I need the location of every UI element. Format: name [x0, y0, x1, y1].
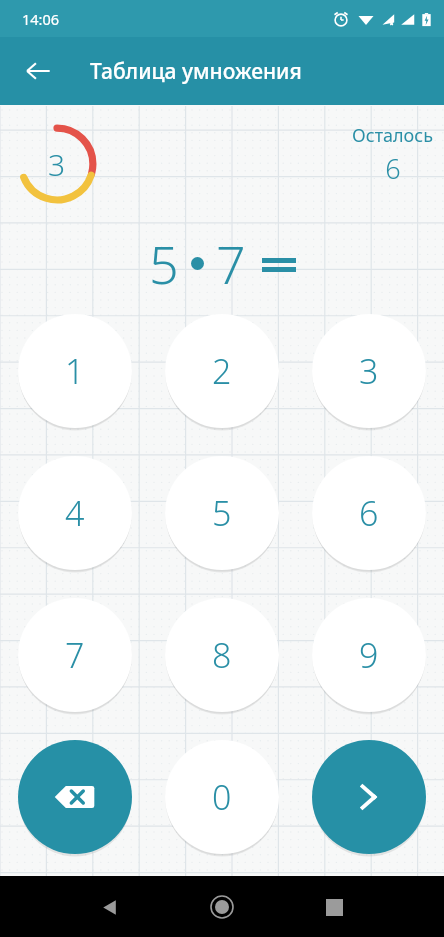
button[interactable]: Recents [310, 883, 358, 931]
button[interactable]: 2 [165, 314, 279, 428]
staticText: 7 [216, 228, 246, 299]
staticText: 0 [212, 774, 232, 820]
button[interactable]: Next [312, 740, 426, 854]
button[interactable]: 5 [165, 456, 279, 570]
button[interactable]: Back [14, 47, 62, 95]
staticText: 14:06 [22, 9, 60, 29]
button[interactable]: 0 [165, 740, 279, 854]
staticText: 5 [212, 490, 232, 536]
staticText: 6 [359, 490, 379, 536]
staticText: 6 [385, 150, 401, 187]
staticText: Осталось [352, 123, 433, 148]
button[interactable]: Backspace [18, 740, 132, 854]
button[interactable]: 7 [18, 598, 132, 712]
staticText: Таблица умножения [90, 57, 302, 86]
button[interactable]: 8 [165, 598, 279, 712]
staticText: 2 [212, 348, 232, 394]
button[interactable]: 6 [312, 456, 426, 570]
staticText: 8 [212, 632, 232, 678]
staticText: 9 [359, 632, 379, 678]
button[interactable]: Back [86, 883, 134, 931]
staticText: 7 [65, 632, 85, 678]
staticText: 3 [48, 144, 66, 185]
staticText: 4 [65, 490, 85, 536]
staticText: 5 [149, 228, 179, 299]
staticText: 3 [359, 348, 379, 394]
button[interactable]: 1 [18, 314, 132, 428]
button[interactable]: 4 [18, 456, 132, 570]
button[interactable]: Home [198, 883, 246, 931]
button[interactable]: 9 [312, 598, 426, 712]
staticText: 1 [65, 348, 85, 394]
button[interactable]: 3 [312, 314, 426, 428]
